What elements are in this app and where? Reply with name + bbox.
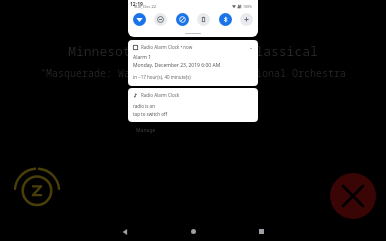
- staticText: Radio Alarm Clock • now: [141, 44, 193, 50]
- button[interactable]: Bluetooth: [219, 13, 232, 26]
- button[interactable]: Home: [173, 222, 213, 241]
- staticText: tap to switch off: [133, 111, 168, 117]
- button[interactable]: Manage: [134, 126, 158, 135]
- staticText: Alarm 1: [133, 54, 152, 61]
- button[interactable]: Edit tiles: [240, 13, 253, 26]
- staticText: Radio Alarm Clock: [141, 92, 180, 98]
- staticText: "Masquerade: Waltz" - Lithuanian Nationa…: [40, 66, 346, 80]
- button[interactable]: Radio Alarm Clock • now: [128, 40, 258, 86]
- button[interactable]: Radio Alarm Clock: [128, 88, 258, 122]
- staticText: Monday, December 23, 2019 6:00 AM: [133, 62, 221, 69]
- staticText: Minnesota Public Radio Classical: [68, 42, 318, 60]
- button[interactable]: Recents: [241, 222, 281, 241]
- staticText: Sun, Dec 22: [134, 4, 156, 9]
- staticText: Manage: [136, 127, 156, 134]
- staticText: 100%: [243, 4, 252, 9]
- button[interactable]: Auto-rotate: [176, 13, 189, 26]
- button[interactable]: Alarm: [14, 165, 60, 211]
- button[interactable]: Wi-Fi: [133, 13, 146, 26]
- staticText: ⌄: [249, 45, 253, 50]
- button[interactable]: Do not disturb: [154, 13, 167, 26]
- staticText: radio is on: [133, 103, 156, 109]
- button[interactable]: Back: [105, 222, 145, 241]
- staticText: in ~17 hour(s), 40 minute(s): [133, 74, 191, 80]
- button[interactable]: Battery Saver: [197, 13, 210, 26]
- button[interactable]: Stop: [330, 173, 376, 219]
- staticText: 12:19: [130, 1, 143, 8]
